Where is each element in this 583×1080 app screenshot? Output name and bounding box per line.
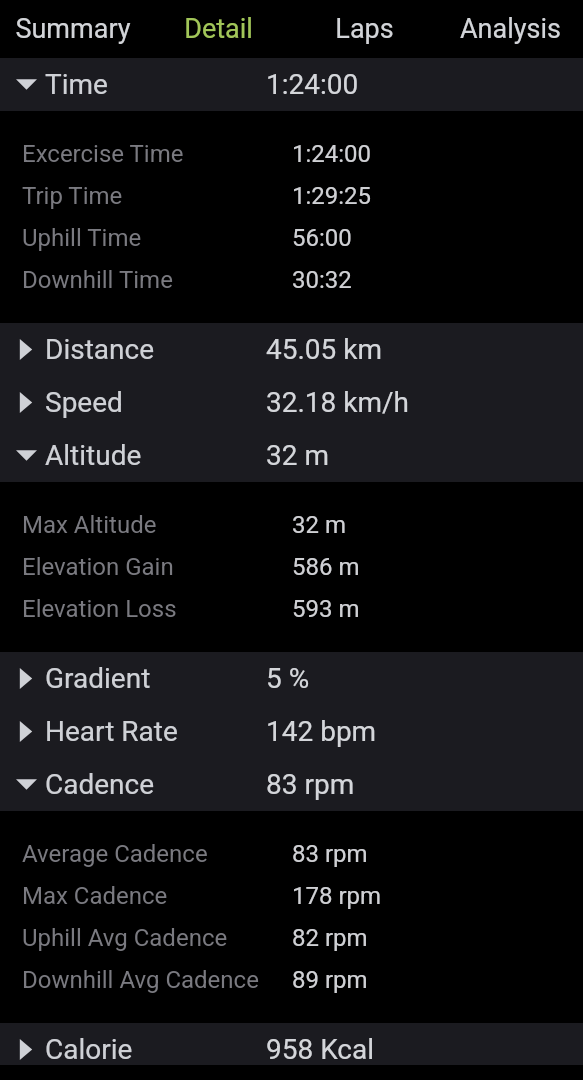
button[interactable]: Average Cadence [0, 833, 583, 875]
button[interactable]: Gradient [0, 652, 583, 705]
button[interactable]: Detail [145, 0, 291, 58]
staticText: 32 m [266, 439, 329, 472]
staticText: Max Altitude [22, 511, 157, 539]
staticText: Elevation Loss [22, 595, 177, 623]
staticText: 30:32 [292, 266, 352, 294]
button[interactable]: Calorie [0, 1023, 583, 1076]
button[interactable]: Speed [0, 376, 583, 429]
button[interactable]: Uphill Avg Cadence [0, 917, 583, 959]
staticText: 593 m [292, 595, 360, 623]
button[interactable]: Uphill Time [0, 217, 583, 259]
staticText: Analysis [460, 13, 561, 45]
button[interactable]: Trip Time [0, 175, 583, 217]
staticText: Elevation Gain [22, 553, 174, 581]
staticText: 178 rpm [292, 882, 382, 910]
staticText: 5 % [266, 662, 310, 695]
button[interactable]: Analysis [437, 0, 583, 58]
staticText: Average Cadence [22, 840, 208, 868]
staticText: Summary [15, 13, 131, 45]
staticText: 142 bpm [266, 715, 377, 748]
button[interactable]: Elevation Gain [0, 546, 583, 588]
staticText: Distance [45, 333, 154, 366]
button[interactable]: Downhill Avg Cadence [0, 959, 583, 1001]
staticText: Heart Rate [45, 715, 178, 748]
staticText: 586 m [292, 553, 360, 581]
staticText: 32 m [292, 511, 346, 539]
button[interactable]: Max Altitude [0, 504, 583, 546]
staticText: Excercise Time [22, 140, 184, 168]
button[interactable]: Altitude [0, 429, 583, 482]
button[interactable]: Max Cadence [0, 875, 583, 917]
staticText: 82 rpm [292, 924, 368, 952]
staticText: Altitude [45, 439, 142, 472]
staticText: 56:00 [292, 224, 352, 252]
staticText: Downhill Avg Cadence [22, 966, 259, 994]
staticText: Downhill Time [22, 266, 173, 294]
button[interactable]: Distance [0, 323, 583, 376]
staticText: Uphill Time [22, 224, 142, 252]
staticText: Calorie [45, 1033, 133, 1066]
staticText: Uphill Avg Cadence [22, 924, 228, 952]
staticText: 1:24:00 [266, 68, 359, 101]
button[interactable]: Downhill Time [0, 259, 583, 301]
staticText: Time [45, 68, 108, 101]
staticText: Detail [184, 13, 253, 45]
button[interactable]: Cadence [0, 758, 583, 811]
staticText: 45.05 km [266, 333, 383, 366]
staticText: 958 Kcal [266, 1033, 375, 1066]
staticText: 1:29:25 [292, 182, 372, 210]
staticText: Gradient [45, 662, 151, 695]
staticText: 83 rpm [292, 840, 368, 868]
staticText: Laps [335, 13, 394, 45]
button[interactable]: Elevation Loss [0, 588, 583, 630]
staticText: Cadence [45, 768, 155, 801]
staticText: Trip Time [22, 182, 123, 210]
staticText: 1:24:00 [292, 140, 372, 168]
staticText: 83 rpm [266, 768, 355, 801]
button[interactable]: Summary [0, 0, 145, 58]
button[interactable]: Heart Rate [0, 705, 583, 758]
staticText: 32.18 km/h [266, 386, 409, 419]
button[interactable]: Excercise Time [0, 133, 583, 175]
button[interactable]: Laps [291, 0, 437, 58]
staticText: Max Cadence [22, 882, 168, 910]
staticText: 89 rpm [292, 966, 368, 994]
button[interactable]: Time [0, 58, 583, 111]
staticText: Speed [45, 386, 123, 419]
